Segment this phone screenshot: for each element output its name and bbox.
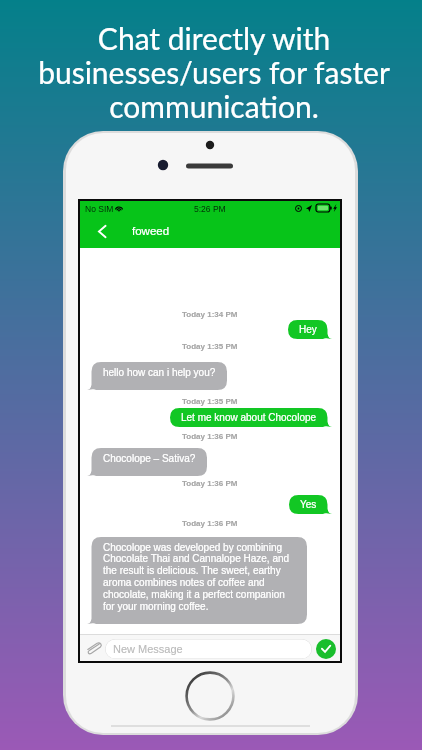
staticText: 5:26 PM <box>194 204 226 213</box>
staticText: Hey <box>299 324 317 335</box>
button[interactable]: Attach file <box>84 640 102 656</box>
staticText: Today 1:35 PM <box>182 397 238 406</box>
button[interactable]: Chocolope was developed by combining Cho… <box>103 542 296 612</box>
staticText: Today 1:36 PM <box>182 479 238 488</box>
staticText: Chat directly with businesses/users for … <box>38 20 390 124</box>
button[interactable]: New Message <box>105 639 312 659</box>
staticText: New Message <box>113 643 183 655</box>
button[interactable]: Send <box>316 639 336 659</box>
other: Back <box>98 225 106 238</box>
staticText: No SIM <box>85 204 114 213</box>
button[interactable]: Let me know about Chocolope <box>181 412 317 423</box>
staticText: Chocolope was developed by combining Cho… <box>103 542 296 612</box>
staticText: foweed <box>132 225 170 238</box>
staticText: Chocolope – Sativa? <box>103 453 196 464</box>
staticText: Yes <box>300 499 317 510</box>
button[interactable]: Hey <box>299 324 317 335</box>
button[interactable]: Back <box>80 215 340 248</box>
staticText: hello how can i help you? <box>103 367 216 378</box>
staticText: Today 1:36 PM <box>182 519 238 528</box>
staticText: Today 1:36 PM <box>182 432 238 441</box>
button[interactable]: Yes <box>300 499 317 510</box>
button[interactable]: hello how can i help you? <box>103 367 216 378</box>
staticText: Let me know about Chocolope <box>181 412 317 423</box>
staticText: Today 1:34 PM <box>182 310 238 319</box>
button[interactable]: Chocolope – Sativa? <box>103 453 196 464</box>
staticText: Today 1:35 PM <box>182 342 238 351</box>
